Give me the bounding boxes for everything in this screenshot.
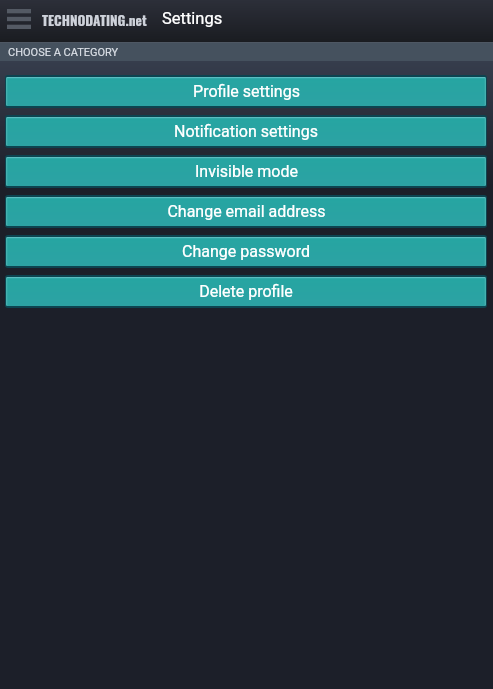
button[interactable]: TECHNODATING.net (42, 10, 147, 30)
staticText: Change password (182, 242, 310, 261)
staticText: Settings (162, 9, 223, 28)
button[interactable]: Open navigation menu (7, 9, 33, 31)
button[interactable]: Change email address (6, 197, 486, 226)
staticText: Notification settings (174, 122, 318, 141)
staticText: Change email address (167, 202, 326, 221)
staticText: CHOOSE A CATEGORY (8, 46, 119, 59)
button[interactable]: Profile settings (6, 77, 486, 106)
button[interactable]: Delete profile (6, 277, 486, 306)
staticText: Profile settings (193, 82, 300, 101)
button[interactable]: Invisible mode (6, 157, 486, 186)
button[interactable]: Change password (6, 237, 486, 266)
staticText: Delete profile (199, 282, 293, 301)
button[interactable]: Notification settings (6, 117, 486, 146)
staticText: Invisible mode (195, 162, 298, 181)
